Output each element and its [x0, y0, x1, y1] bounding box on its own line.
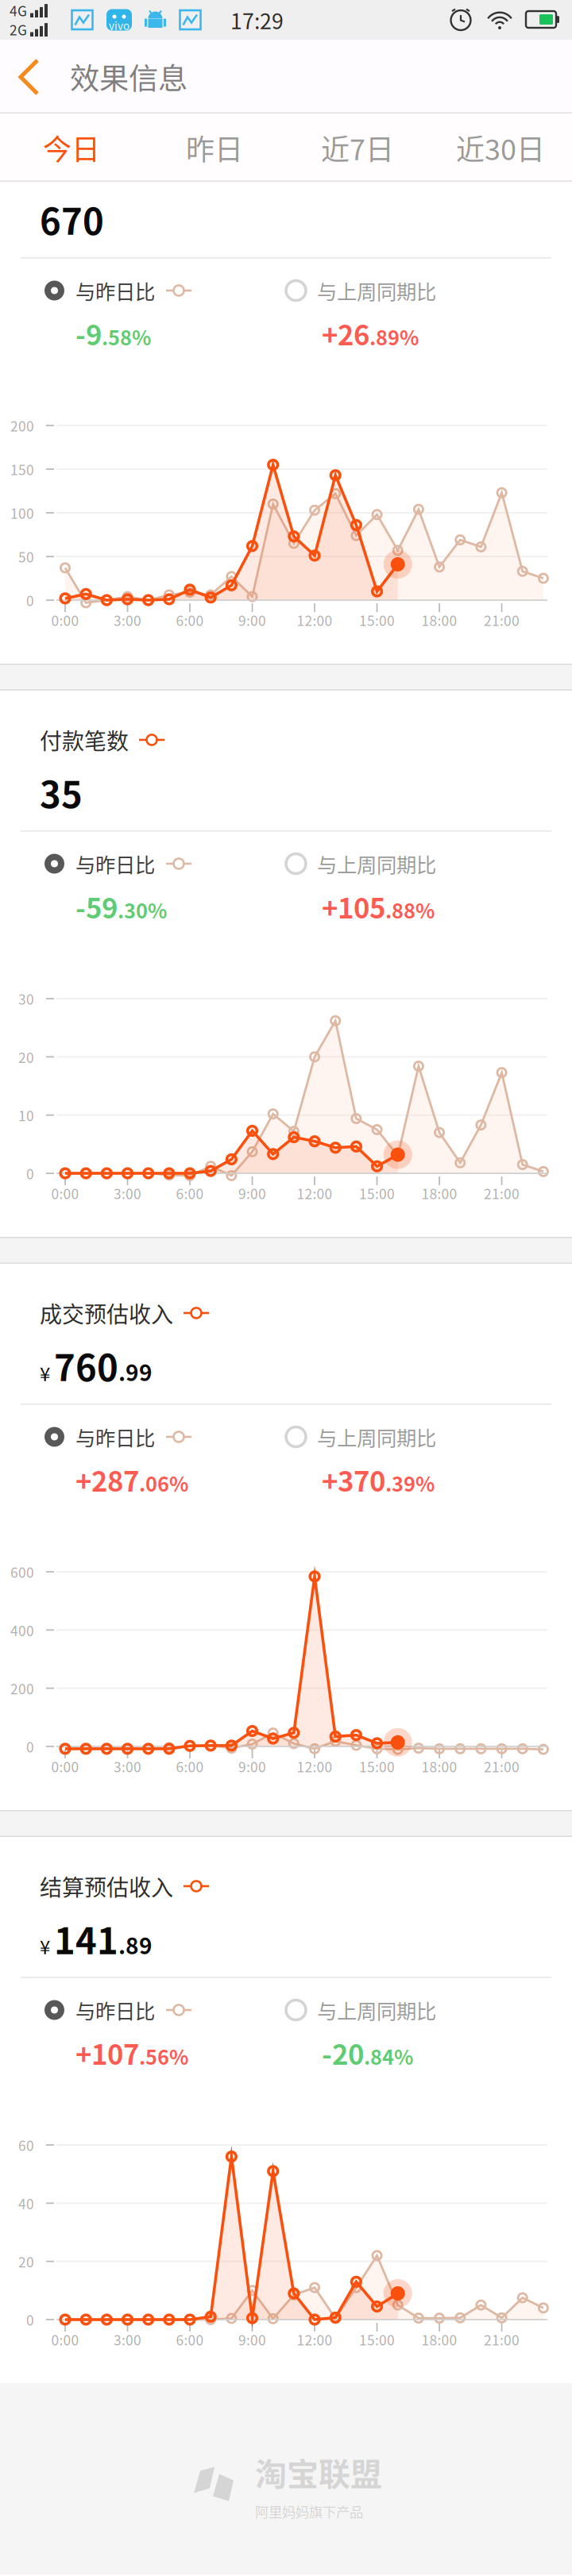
staticText: 9:00	[238, 1756, 266, 1776]
staticText: +287	[75, 1460, 139, 1500]
staticText: 18:00	[422, 1756, 457, 1776]
staticText: 18:00	[422, 1183, 457, 1203]
staticText: .56%	[139, 2042, 188, 2071]
button[interactable]: 与上周同期比	[286, 273, 524, 308]
staticText: +105	[322, 887, 385, 926]
staticText: 与上周同期比	[317, 276, 436, 305]
staticText: 与昨日比	[75, 849, 155, 878]
button[interactable]: 与上周同期比	[286, 1993, 524, 2027]
staticText: .89%	[369, 322, 419, 351]
staticText: .84%	[364, 2042, 413, 2071]
staticText: ¥	[40, 1359, 50, 1387]
staticText: .88%	[385, 895, 435, 924]
staticText: 0	[26, 590, 34, 610]
staticText: -59	[75, 887, 118, 926]
staticText: .39%	[385, 1468, 435, 1497]
staticText: 10	[18, 1105, 34, 1125]
staticText: -20	[322, 2033, 364, 2073]
staticText: 9:00	[238, 2330, 266, 2349]
staticText: 成交预估收入	[40, 1297, 173, 1329]
staticText: 21:00	[484, 610, 520, 630]
staticText: 昨日	[186, 127, 243, 168]
staticText: +370	[322, 1460, 385, 1500]
staticText: 9:00	[238, 1183, 266, 1203]
staticText: 18:00	[422, 610, 457, 630]
staticText: 3:00	[114, 1756, 141, 1776]
staticText: 30	[18, 989, 34, 1009]
staticText: 35	[40, 766, 83, 818]
staticText: 近7日	[321, 127, 394, 168]
staticText: 2G	[10, 19, 27, 39]
staticText: 20	[18, 1047, 34, 1067]
staticText: 400	[10, 1620, 34, 1640]
staticText: 9:00	[238, 610, 266, 630]
staticText: 0:00	[51, 1183, 79, 1203]
button[interactable]: 近7日	[286, 114, 429, 182]
staticText: 40	[18, 2193, 34, 2213]
staticText: 12:00	[297, 610, 332, 630]
staticText: 3:00	[114, 1183, 141, 1203]
staticText: 与昨日比	[75, 1995, 155, 2025]
button[interactable]: 今日	[0, 114, 143, 182]
staticText: 0:00	[51, 1756, 79, 1776]
staticText: 21:00	[484, 2330, 520, 2349]
staticText: 15:00	[359, 2330, 395, 2349]
staticText: 0	[26, 1163, 34, 1183]
staticText: vivo	[109, 18, 129, 33]
staticText: 12:00	[297, 1183, 332, 1203]
staticText: 600	[10, 1562, 34, 1582]
button[interactable]: 与昨日比	[44, 1993, 283, 2027]
staticText: +107	[75, 2033, 139, 2073]
staticText: 0	[26, 1737, 34, 1756]
staticText: 付款笔数	[40, 724, 129, 756]
staticText: 20	[18, 2251, 34, 2271]
staticText: 12:00	[297, 1756, 332, 1776]
staticText: 6:00	[176, 1756, 204, 1776]
staticText: 60	[18, 2135, 34, 2155]
staticText: 100	[10, 503, 34, 523]
staticText: 与昨日比	[75, 1422, 155, 1451]
button[interactable]: 近30日	[429, 114, 572, 182]
staticText: 21:00	[484, 1183, 520, 1203]
staticText: .30%	[118, 895, 167, 924]
staticText: 6:00	[176, 2330, 204, 2349]
staticText: 效果信息	[70, 55, 187, 98]
button[interactable]: 与上周同期比	[286, 1419, 524, 1454]
staticText: 50	[18, 547, 34, 566]
staticText: 6:00	[176, 610, 204, 630]
staticText: 15:00	[359, 1756, 395, 1776]
staticText: ¥	[40, 1932, 50, 1960]
staticText: 141	[54, 1913, 118, 1965]
staticText: 今日	[43, 127, 100, 168]
button[interactable]: 与昨日比	[44, 846, 283, 881]
staticText: 3:00	[114, 2330, 141, 2349]
staticText: 18:00	[422, 2330, 457, 2349]
button[interactable]: 与昨日比	[44, 273, 283, 308]
staticText: 与上周同期比	[317, 849, 436, 878]
staticText: 4G	[10, 0, 27, 20]
button[interactable]: 与昨日比	[44, 1419, 283, 1454]
staticText: 0:00	[51, 2330, 79, 2349]
staticText: -9	[75, 313, 102, 353]
staticText: 与昨日比	[75, 276, 155, 305]
staticText: .06%	[139, 1468, 188, 1497]
staticText: 200	[10, 1678, 34, 1698]
staticText: 15:00	[359, 1183, 395, 1203]
staticText: 12:00	[297, 2330, 332, 2349]
staticText: 与上周同期比	[317, 1422, 436, 1451]
button[interactable]: 与上周同期比	[286, 846, 524, 881]
staticText: 与上周同期比	[317, 1995, 436, 2025]
staticText: +26	[322, 313, 369, 353]
staticText: 近30日	[456, 127, 545, 168]
staticText: 150	[10, 459, 34, 479]
button[interactable]: 昨日	[143, 114, 286, 182]
button[interactable]: Back	[0, 40, 60, 114]
staticText: 阿里妈妈旗下产品	[255, 2501, 363, 2521]
staticText: 15:00	[359, 610, 395, 630]
staticText: .89	[118, 1928, 153, 1961]
staticText: 支付金额	[40, 151, 129, 183]
staticText: 0:00	[51, 610, 79, 630]
staticText: 21:00	[484, 1756, 520, 1776]
staticText: 结算预估收入	[40, 1870, 173, 1902]
staticText: .99	[118, 1355, 153, 1387]
